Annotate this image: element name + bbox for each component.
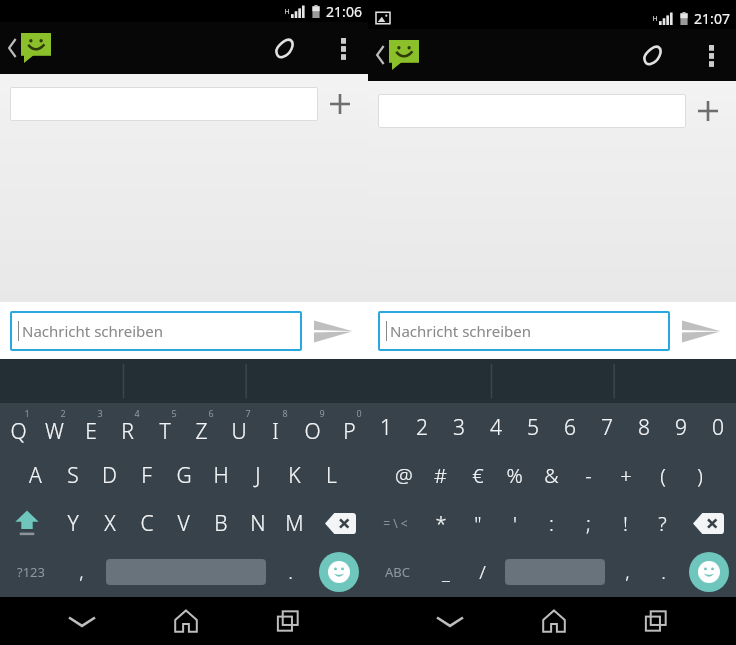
button[interactable]: Emoji	[681, 547, 736, 597]
staticText: .	[661, 559, 666, 585]
button[interactable]: !	[607, 499, 644, 547]
button[interactable]: 0	[331, 403, 368, 451]
button[interactable]: 3	[72, 403, 109, 451]
button[interactable]: .	[271, 547, 310, 597]
button[interactable]: 1	[0, 403, 36, 451]
button[interactable]: 4	[477, 403, 514, 451]
button[interactable]: Back	[4, 29, 55, 67]
button[interactable]: Emoji	[310, 547, 368, 597]
staticText: H	[284, 7, 290, 17]
button[interactable]: 5	[514, 403, 551, 451]
button[interactable]: Home	[164, 599, 208, 643]
button[interactable]: 9	[662, 403, 699, 451]
button[interactable]: D	[91, 451, 128, 499]
button[interactable]: 5	[146, 403, 183, 451]
button[interactable]: More options	[331, 28, 356, 69]
button[interactable]: 6	[183, 403, 220, 451]
button[interactable]: Space	[101, 547, 271, 597]
button[interactable]: F	[128, 451, 165, 499]
button[interactable]: X	[91, 499, 128, 547]
button[interactable]: Shift	[0, 499, 54, 547]
button[interactable]: Send	[308, 312, 358, 350]
staticText: %	[506, 462, 523, 489]
button[interactable]: /	[464, 547, 500, 597]
button[interactable]: :	[533, 499, 570, 547]
button[interactable]: Send	[676, 312, 726, 350]
button[interactable]: Space	[500, 547, 609, 597]
button[interactable]: More options	[699, 35, 724, 76]
button[interactable]: _	[427, 547, 464, 597]
button[interactable]: "	[459, 499, 496, 547]
button[interactable]: &	[533, 451, 570, 499]
button[interactable]: Add recipient	[690, 93, 726, 129]
button[interactable]: ,	[609, 547, 645, 597]
button[interactable]: Back	[372, 36, 423, 74]
button[interactable]: Attach	[634, 34, 672, 76]
button[interactable]: @	[385, 451, 422, 499]
button[interactable]: Hide keyboard	[427, 604, 473, 638]
button[interactable]: = \ <	[368, 499, 422, 547]
button[interactable]: Recipient	[10, 87, 318, 121]
button[interactable]: ;	[570, 499, 607, 547]
button[interactable]: Hide keyboard	[59, 604, 105, 638]
button[interactable]: #	[422, 451, 459, 499]
button[interactable]: +	[607, 451, 644, 499]
button[interactable]: (	[644, 451, 681, 499]
button[interactable]: Recent apps	[635, 600, 677, 642]
staticText: P	[343, 417, 356, 446]
button[interactable]: ABC	[368, 547, 427, 597]
button[interactable]: 8	[625, 403, 662, 451]
button[interactable]: G	[165, 451, 202, 499]
button[interactable]: V	[165, 499, 202, 547]
button[interactable]: 3	[440, 403, 477, 451]
staticText: = \ <	[383, 515, 408, 531]
button[interactable]: Backspace	[313, 499, 368, 547]
button[interactable]: 4	[109, 403, 146, 451]
button[interactable]: 0	[699, 403, 736, 451]
button[interactable]: )	[681, 451, 718, 499]
button[interactable]: 8	[257, 403, 294, 451]
staticText: #	[434, 462, 447, 489]
button[interactable]: Add recipient	[322, 86, 358, 122]
button[interactable]: Attach	[266, 27, 304, 69]
button[interactable]: 1	[368, 403, 404, 451]
button[interactable]: '	[496, 499, 533, 547]
button[interactable]: %	[496, 451, 533, 499]
button[interactable]: 6	[551, 403, 588, 451]
button[interactable]: 2	[404, 403, 440, 451]
button[interactable]: Backspace	[681, 499, 736, 547]
button[interactable]: Y	[54, 499, 91, 547]
button[interactable]: C	[128, 499, 165, 547]
button[interactable]: Recipient	[378, 94, 686, 128]
button[interactable]: 7	[588, 403, 625, 451]
button[interactable]: *	[422, 499, 459, 547]
button[interactable]: Nachricht schreiben	[10, 311, 302, 351]
staticText: 1	[24, 407, 30, 419]
staticText: 3	[97, 407, 103, 419]
button[interactable]: ?	[644, 499, 681, 547]
staticText: ;	[586, 510, 591, 537]
button[interactable]: A	[17, 451, 54, 499]
staticText: +	[620, 462, 632, 489]
button[interactable]: -	[570, 451, 607, 499]
staticText: .	[288, 559, 293, 585]
button[interactable]: B	[202, 499, 239, 547]
button[interactable]: N	[239, 499, 276, 547]
button[interactable]: S	[54, 451, 91, 499]
button[interactable]: L	[313, 451, 350, 499]
staticText: "	[474, 510, 482, 537]
button[interactable]: Home	[532, 599, 576, 643]
button[interactable]: Recent apps	[267, 600, 309, 642]
button[interactable]: 7	[220, 403, 257, 451]
button[interactable]: H	[202, 451, 239, 499]
button[interactable]: M	[276, 499, 313, 547]
button[interactable]: ,	[62, 547, 101, 597]
button[interactable]: .	[645, 547, 681, 597]
button[interactable]: Nachricht schreiben	[378, 311, 670, 351]
button[interactable]: 9	[294, 403, 331, 451]
button[interactable]: ?123	[0, 547, 62, 597]
button[interactable]: 2	[36, 403, 72, 451]
button[interactable]: K	[276, 451, 313, 499]
button[interactable]: J	[239, 451, 276, 499]
button[interactable]: €	[459, 451, 496, 499]
